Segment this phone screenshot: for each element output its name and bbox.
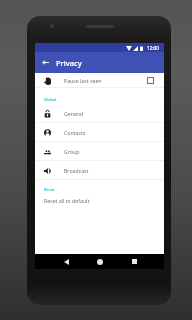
staticText: Contacts (64, 129, 86, 136)
staticText: Reset all to default (44, 197, 90, 204)
staticText: Group (64, 148, 80, 155)
staticText: Privacy (56, 58, 82, 68)
button[interactable]: Toggle pause last seen (144, 74, 157, 87)
button[interactable]: Back (60, 255, 73, 268)
button[interactable]: Home (93, 255, 106, 268)
staticText: Reset (44, 187, 55, 192)
button[interactable]: General (35, 104, 164, 123)
staticText: 12:00 (147, 45, 159, 51)
button[interactable]: Back (38, 55, 53, 70)
button[interactable]: Pause last seen (35, 73, 164, 88)
button[interactable]: Broadcast (35, 161, 164, 180)
staticText: General (64, 110, 84, 117)
button[interactable]: Recent apps (128, 255, 141, 268)
staticText: Global (44, 97, 57, 102)
button[interactable]: Reset all to default (35, 194, 164, 207)
staticText: Pause last seen (64, 77, 102, 84)
button[interactable]: Group (35, 142, 164, 161)
staticText: Broadcast (64, 167, 89, 174)
button[interactable]: Contacts (35, 123, 164, 142)
